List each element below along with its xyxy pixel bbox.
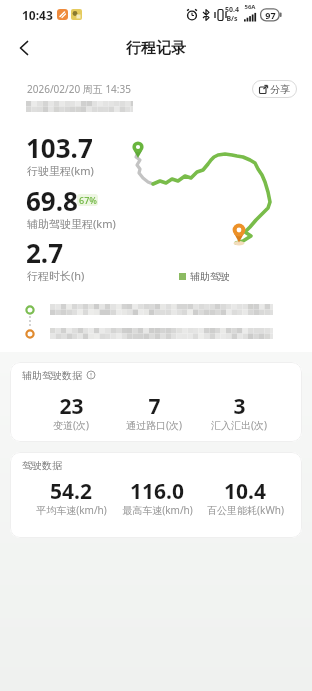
staticText: 67% — [79, 194, 97, 206]
staticText: 7 — [148, 392, 161, 414]
button[interactable]: 分享 — [252, 80, 297, 98]
staticText: 辅助驾驶 — [190, 270, 230, 283]
staticText: 10:43 — [22, 7, 53, 23]
staticText: 平均车速(km/h) — [36, 503, 107, 516]
staticText: 通过路口(次) — [126, 418, 182, 431]
staticText: 2.7 — [26, 235, 64, 263]
staticText: 50.4 — [225, 5, 239, 15]
staticText: 69.8 — [26, 183, 78, 211]
staticText: 行驶里程(km) — [27, 163, 94, 178]
staticText: 23 — [59, 392, 84, 414]
staticText: 116.0 — [130, 477, 184, 499]
staticText: 54.2 — [50, 477, 92, 499]
button[interactable] — [18, 41, 32, 55]
staticText: 汇入汇出(次) — [211, 418, 267, 431]
staticText: 56A — [244, 3, 256, 11]
staticText: 最高车速(km/h) — [122, 503, 193, 516]
staticText: 百公里能耗(kWh) — [207, 503, 284, 516]
staticText: 行程记录 — [126, 39, 186, 58]
staticText: 驾驶数据 — [22, 459, 62, 472]
staticText: 辅助驾驶数据 — [22, 369, 82, 382]
staticText: B/s — [226, 14, 238, 24]
staticText: 97 — [265, 9, 276, 21]
staticText: 辅助驾驶里程(km) — [27, 216, 116, 231]
staticText: 10.4 — [224, 477, 266, 499]
staticText: 变道(次) — [53, 418, 89, 431]
staticText: 103.7 — [26, 130, 93, 158]
staticText: 3 — [233, 392, 246, 414]
staticText: 2026/02/20 周五 14:35 — [27, 82, 131, 96]
staticText: 分享 — [270, 83, 290, 96]
staticText: 行程时长(h) — [27, 268, 85, 283]
